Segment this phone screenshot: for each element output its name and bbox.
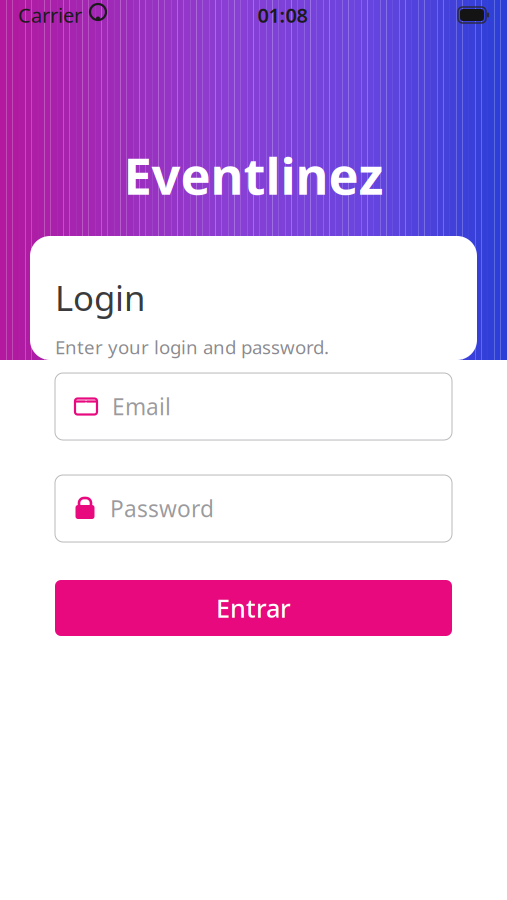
staticText: Carrier	[18, 2, 82, 28]
button[interactable]: Entrar	[55, 580, 452, 636]
staticText: Entrar	[216, 591, 291, 625]
staticText: Login	[55, 275, 145, 321]
button[interactable]: Email	[55, 373, 452, 440]
button[interactable]: Password	[55, 475, 452, 542]
staticText: Password	[110, 493, 214, 523]
staticText: Eventlinez	[123, 141, 383, 209]
staticText: 01:08	[257, 2, 307, 28]
staticText: Email	[112, 391, 171, 421]
staticText: Enter your login and password.	[55, 335, 329, 359]
